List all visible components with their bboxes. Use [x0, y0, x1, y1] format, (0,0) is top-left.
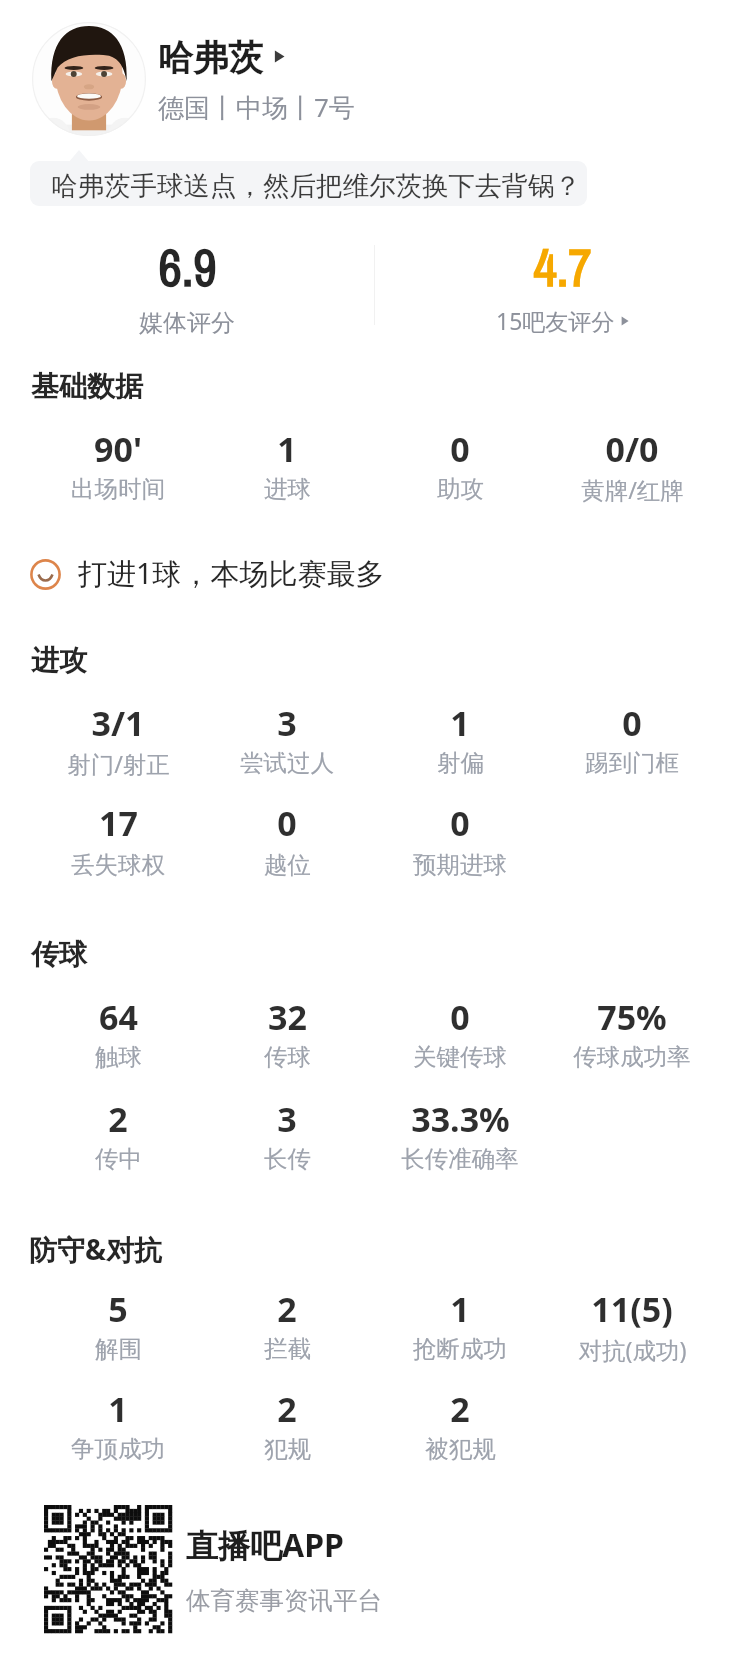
staticText: 哈弗茨 [158, 36, 263, 80]
staticText: 传球 [31, 937, 87, 972]
staticText: 长传准确率 [401, 1144, 519, 1174]
button[interactable]: 1 [33, 1388, 203, 1468]
button[interactable]: 打进1球，本场比赛最多 [24, 550, 404, 598]
staticText: 进攻 [31, 643, 87, 678]
staticText: 4.7 [533, 233, 592, 302]
staticText: 解围 [95, 1334, 142, 1364]
staticText: 抢断成功 [413, 1334, 507, 1364]
staticText: 预期进球 [413, 850, 507, 880]
staticText: 体育赛事资讯平台 [186, 1585, 382, 1616]
staticText: 尝试过人 [240, 748, 334, 778]
staticText: 0 [450, 426, 470, 472]
staticText: 直播吧APP [186, 1523, 344, 1567]
button[interactable] [30, 161, 587, 206]
button[interactable]: 0 [547, 702, 717, 782]
staticText: 对抗(成功) [578, 1334, 687, 1366]
staticText: 打进1球，本场比赛最多 [78, 553, 385, 593]
staticText: 助攻 [437, 474, 484, 504]
staticText: 德国丨中场丨7号 [158, 89, 355, 125]
staticText: 争顶成功 [71, 1434, 165, 1464]
staticText: 拦截 [264, 1334, 311, 1364]
button[interactable]: 2 [202, 1388, 372, 1468]
button[interactable]: 3 [202, 702, 372, 782]
staticText: 长传 [264, 1144, 311, 1174]
button[interactable]: 0 [375, 428, 545, 508]
staticText: 3 [277, 700, 297, 746]
staticText: 2 [277, 1386, 297, 1432]
staticText: 丢失球权 [71, 850, 165, 880]
button[interactable]: Open player page [272, 49, 288, 65]
button[interactable]: Player photo [32, 22, 146, 136]
button[interactable]: 3/1 [33, 702, 203, 782]
staticText: 0 [450, 994, 470, 1040]
staticText: 1 [108, 1386, 128, 1432]
staticText: 2 [277, 1286, 297, 1332]
staticText: 射门/射正 [67, 748, 170, 780]
button[interactable]: 1 [202, 428, 372, 508]
staticText: 75% [597, 994, 667, 1040]
staticText: 传球成功率 [573, 1042, 691, 1072]
staticText: 媒体评分 [139, 308, 235, 338]
staticText: 11(5) [591, 1286, 673, 1332]
staticText: 6.9 [158, 233, 217, 302]
staticText: 0 [277, 800, 297, 846]
button[interactable]: 17 [33, 802, 203, 884]
button[interactable]: 90' [33, 428, 203, 508]
staticText: 传球 [264, 1042, 311, 1072]
staticText: 3 [277, 1096, 297, 1142]
staticText: 进球 [264, 474, 311, 504]
staticText: 33.3% [411, 1096, 510, 1142]
button[interactable]: 0 [375, 996, 545, 1076]
button[interactable]: 0 [202, 802, 372, 884]
staticText: 犯规 [264, 1434, 311, 1464]
staticText: 传中 [95, 1144, 142, 1174]
button[interactable]: 4.7 [396, 236, 730, 342]
button[interactable]: 11(5) [547, 1288, 717, 1368]
staticText: 踢到门框 [585, 748, 679, 778]
staticText: 触球 [95, 1042, 142, 1072]
staticText: 90' [94, 426, 142, 472]
staticText: 64 [99, 994, 138, 1040]
staticText: 1 [450, 700, 470, 746]
staticText: 3/1 [91, 700, 145, 746]
staticText: 射偏 [437, 748, 484, 778]
staticText: 0 [450, 800, 470, 846]
staticText: 越位 [264, 850, 311, 880]
button[interactable]: 2 [375, 1388, 545, 1468]
staticText: 关键传球 [413, 1042, 507, 1072]
button[interactable]: 直播吧APP [36, 1498, 436, 1640]
button[interactable]: 33.3% [375, 1098, 545, 1178]
staticText: 被犯规 [425, 1434, 496, 1464]
staticText: 32 [268, 994, 307, 1040]
button[interactable]: 1 [375, 1288, 545, 1368]
staticText: 防守&对抗 [29, 1230, 163, 1268]
button[interactable]: 1 [375, 702, 545, 782]
button[interactable]: 3 [202, 1098, 372, 1178]
button[interactable]: 5 [33, 1288, 203, 1368]
staticText: 2 [450, 1386, 470, 1432]
button[interactable]: 75% [547, 996, 717, 1076]
button[interactable]: 32 [202, 996, 372, 1076]
staticText: 基础数据 [31, 369, 143, 404]
staticText: 17 [99, 800, 138, 846]
staticText: 哈弗茨手球送点，然后把维尔茨换下去背锅？ [51, 169, 581, 202]
button[interactable]: 6.9 [20, 236, 354, 342]
button[interactable]: 2 [33, 1098, 203, 1178]
staticText: 1 [450, 1286, 470, 1332]
staticText: 15吧友评分 [496, 305, 615, 336]
staticText: 1 [277, 426, 297, 472]
staticText: 2 [108, 1096, 128, 1142]
button[interactable]: 0 [375, 802, 545, 884]
button[interactable]: 64 [33, 996, 203, 1076]
staticText: 0 [622, 700, 642, 746]
staticText: 0/0 [605, 426, 659, 472]
staticText: 5 [108, 1286, 128, 1332]
staticText: 黄牌/红牌 [581, 474, 684, 506]
button[interactable]: 0/0 [547, 428, 717, 508]
staticText: 出场时间 [71, 474, 165, 504]
button[interactable]: 2 [202, 1288, 372, 1368]
